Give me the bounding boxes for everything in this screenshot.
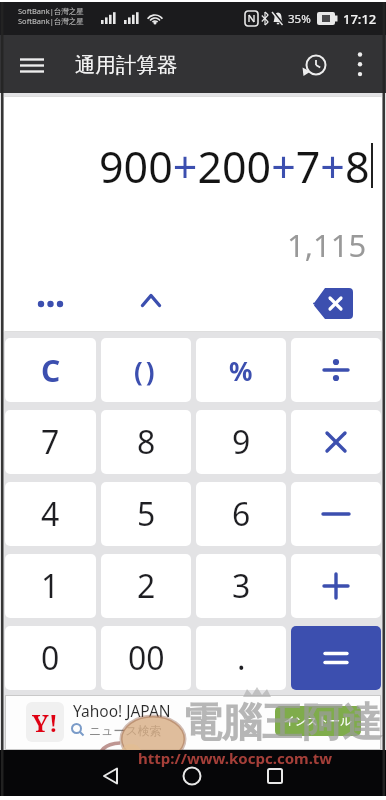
staticText: %: [229, 353, 253, 388]
button[interactable]: [170, 755, 214, 796]
staticText: ニュース検索: [89, 723, 162, 738]
staticText: 1,115: [287, 224, 367, 264]
staticText: 17:12: [343, 10, 377, 28]
staticText: Yahoo! JAPAN: [73, 700, 171, 721]
button[interactable]: 1: [5, 554, 96, 618]
button[interactable]: 8: [101, 410, 191, 474]
staticText: 2: [137, 564, 156, 608]
staticText: 6: [232, 492, 251, 536]
button[interactable]: 0: [5, 626, 96, 690]
button[interactable]: 3: [196, 554, 286, 618]
button[interactable]: 5: [101, 482, 191, 546]
staticText: http://www.kocpc.com.tw: [138, 748, 333, 768]
staticText: Y!: [32, 706, 58, 739]
button[interactable]: [127, 280, 175, 320]
staticText: 4: [41, 492, 60, 536]
staticText: 9: [232, 420, 251, 464]
button[interactable]: [344, 44, 376, 84]
button[interactable]: [88, 755, 132, 796]
button[interactable]: [291, 626, 381, 690]
staticText: 5: [137, 492, 156, 536]
button[interactable]: (): [101, 338, 191, 402]
button[interactable]: 4: [5, 482, 96, 546]
button[interactable]: [303, 282, 363, 324]
staticText: .: [237, 636, 246, 680]
button[interactable]: .: [196, 626, 286, 690]
staticText: C: [41, 350, 61, 391]
button[interactable]: [23, 286, 79, 322]
staticText: 7: [41, 420, 60, 464]
button[interactable]: [291, 410, 381, 474]
staticText: 00: [128, 636, 165, 680]
button[interactable]: [296, 40, 336, 80]
staticText: 3: [232, 564, 251, 608]
button[interactable]: 9: [196, 410, 286, 474]
button[interactable]: %: [196, 338, 286, 402]
button[interactable]: [253, 755, 297, 796]
staticText: 35%: [288, 11, 311, 27]
staticText: 0: [41, 636, 60, 680]
button[interactable]: [291, 554, 381, 618]
staticText: 1: [41, 564, 60, 608]
staticText: SoftBank|台灣之星: [18, 6, 84, 16]
button[interactable]: [291, 482, 381, 546]
staticText: 通用計算器: [75, 52, 178, 78]
button[interactable]: 7: [5, 410, 96, 474]
button[interactable]: [12, 55, 52, 81]
button[interactable]: C: [5, 338, 96, 402]
staticText: 900+200+7+8: [99, 137, 370, 193]
staticText: インストール: [284, 714, 352, 728]
staticText: 8: [137, 420, 156, 464]
button[interactable]: インストール: [275, 706, 361, 736]
staticText: SoftBank|台灣之星: [18, 16, 84, 26]
button[interactable]: [291, 338, 381, 402]
button[interactable]: 2: [101, 554, 191, 618]
button[interactable]: 00: [101, 626, 191, 690]
button[interactable]: Y!: [5, 695, 381, 750]
button[interactable]: 6: [196, 482, 286, 546]
staticText: (): [134, 353, 158, 388]
staticText: 電腦王阿達: [182, 697, 382, 747]
